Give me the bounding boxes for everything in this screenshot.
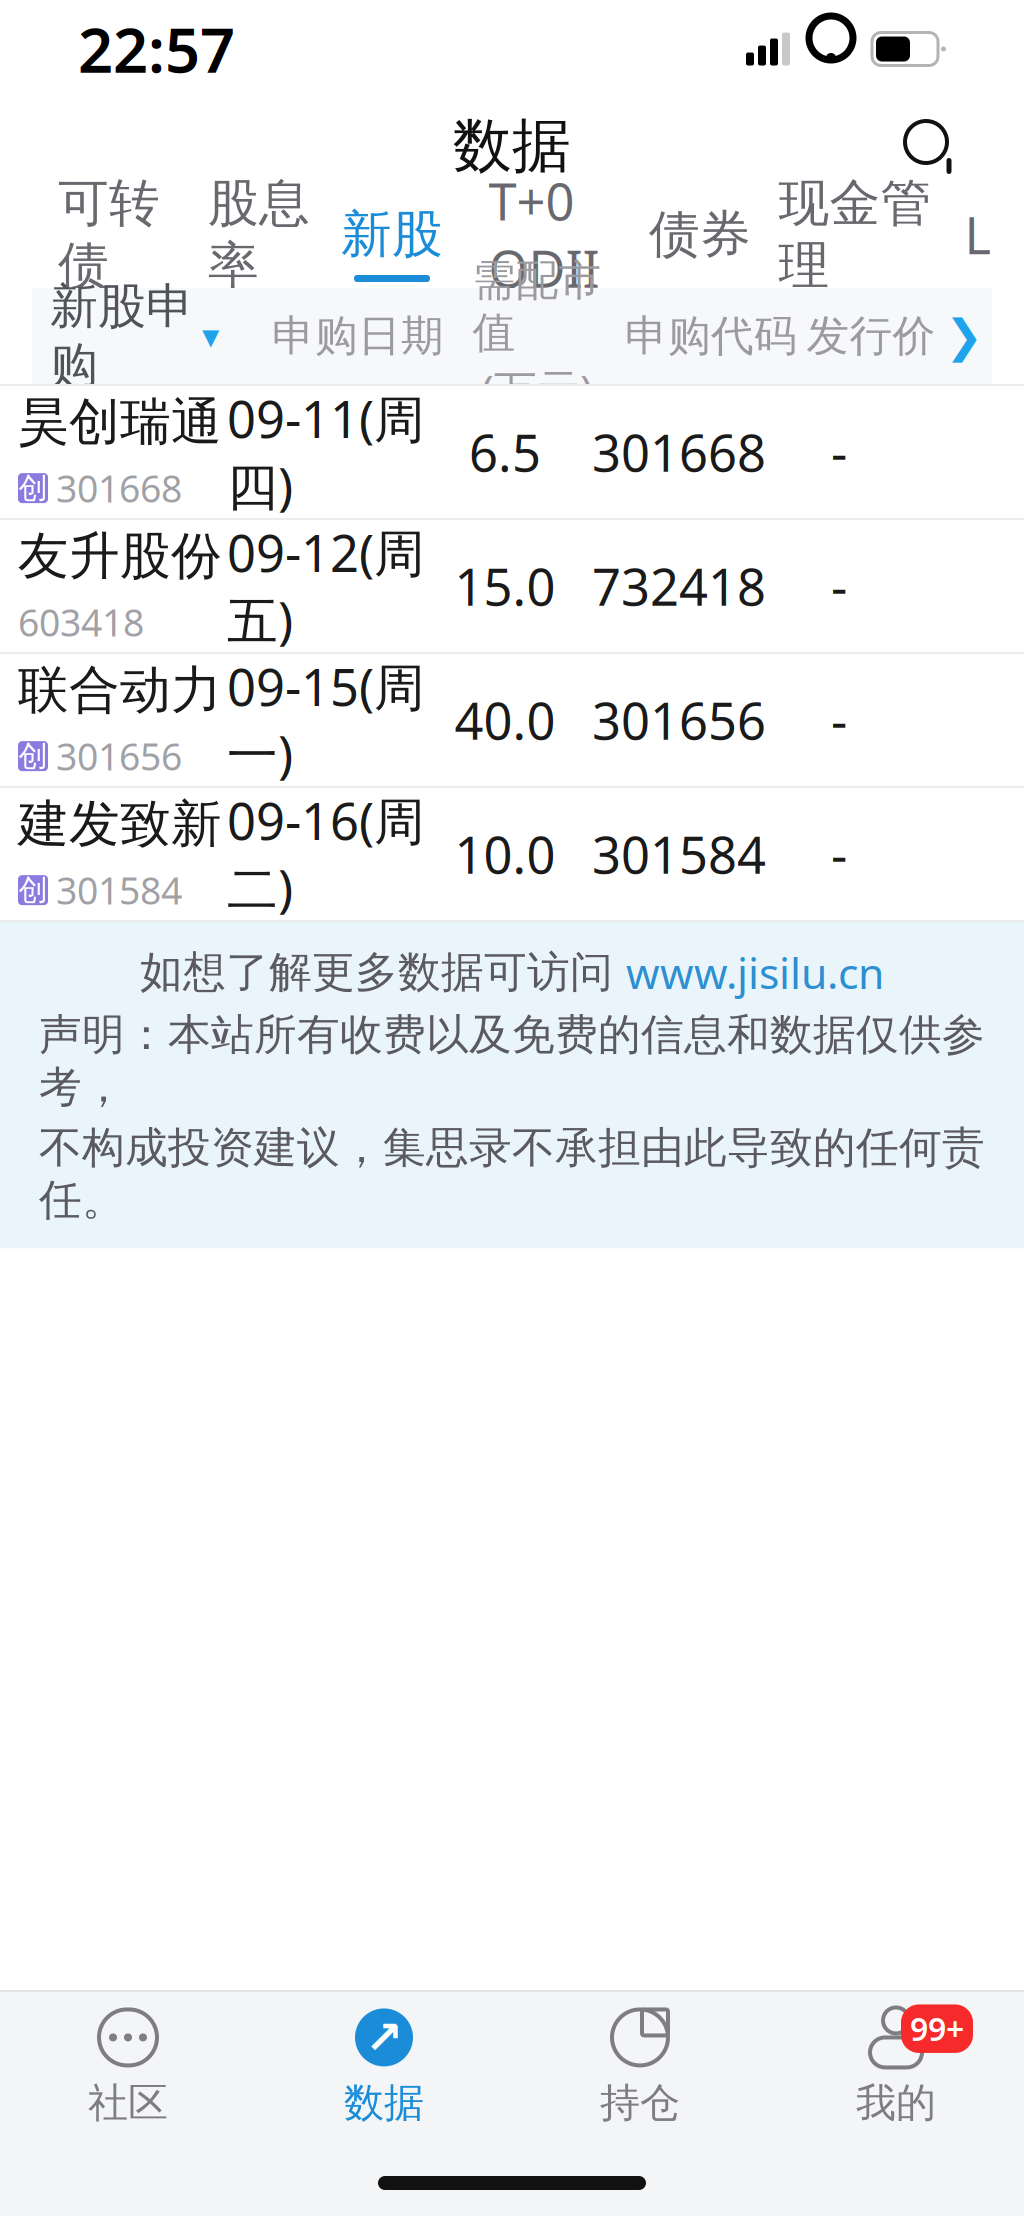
staticText: 不构成投资建议，集思录不承担由此导致的任何责任。 bbox=[39, 1121, 985, 1226]
button[interactable]: 建发致新 bbox=[0, 788, 1024, 922]
staticText: 10.0 bbox=[454, 820, 555, 888]
staticText: - bbox=[831, 418, 847, 486]
staticText: ❯ bbox=[945, 310, 983, 362]
staticText: 22:57 bbox=[78, 8, 235, 90]
button[interactable]: 债券 bbox=[638, 194, 762, 288]
button[interactable]: 更多列 bbox=[936, 288, 992, 384]
staticText: 需配市值 bbox=[472, 254, 601, 359]
staticText: 社区 bbox=[88, 2078, 168, 2127]
staticText: 创 bbox=[18, 470, 47, 506]
staticText: 可转债 bbox=[58, 172, 160, 297]
staticText: 09-15(周一) bbox=[227, 653, 425, 787]
staticText: 09-12(周五) bbox=[227, 519, 425, 653]
staticText: 如想了解更多数据可访问 bbox=[140, 946, 626, 998]
button[interactable]: 新股申购 bbox=[32, 288, 258, 384]
staticText: 现金管理 bbox=[778, 172, 931, 297]
button[interactable]: T+0 QDII bbox=[450, 194, 638, 288]
staticText: 建发致新 bbox=[18, 793, 222, 855]
staticText: 发行价 bbox=[806, 310, 935, 362]
staticText: www.jisilu.cn bbox=[626, 944, 884, 1001]
staticText: T+0 QDII bbox=[488, 167, 599, 302]
staticText: 新股申购 bbox=[50, 277, 194, 395]
staticText: 301584 bbox=[592, 820, 766, 888]
button[interactable]: ↗ bbox=[256, 1992, 512, 2142]
staticText: ▾ bbox=[202, 316, 219, 356]
staticText: 昊创瑞通 bbox=[18, 391, 222, 453]
staticText: 301584 bbox=[56, 865, 182, 915]
staticText: 创 bbox=[18, 872, 47, 908]
button[interactable]: 新股 bbox=[334, 194, 450, 288]
staticText: 301668 bbox=[56, 463, 182, 513]
staticText: - bbox=[831, 552, 847, 620]
button[interactable]: 社区 bbox=[0, 1992, 256, 2142]
staticText: 09-16(周二) bbox=[227, 787, 425, 921]
staticText: 联合动力 bbox=[18, 659, 222, 721]
staticText: 99+ bbox=[910, 2007, 964, 2050]
button[interactable]: 联合动力 bbox=[0, 654, 1024, 788]
staticText: 301668 bbox=[592, 418, 766, 486]
staticText: 15.0 bbox=[454, 552, 555, 620]
button[interactable]: www.jisilu.cn bbox=[626, 944, 884, 1001]
staticText: 持仓 bbox=[600, 2078, 680, 2127]
staticText: 申购日期 bbox=[272, 310, 444, 362]
staticText: (万元) bbox=[481, 361, 593, 418]
button[interactable]: 可转债 bbox=[34, 194, 184, 288]
staticText: ↗ bbox=[365, 2012, 403, 2063]
staticText: 732418 bbox=[592, 552, 766, 620]
staticText: 301656 bbox=[56, 731, 182, 781]
staticText: 申购代码 bbox=[625, 310, 797, 362]
staticText: 股息率 bbox=[208, 172, 310, 297]
staticText: - bbox=[831, 686, 847, 754]
staticText: 新股 bbox=[341, 203, 443, 266]
staticText: 603418 bbox=[18, 597, 144, 647]
staticText: L bbox=[964, 201, 991, 268]
staticText: 债券 bbox=[649, 203, 751, 266]
staticText: 数据 bbox=[453, 110, 571, 182]
staticText: 友升股份 bbox=[18, 525, 222, 587]
staticText: 6.5 bbox=[469, 418, 541, 486]
button[interactable]: 持仓 bbox=[512, 1992, 768, 2142]
button[interactable]: 友升股份 bbox=[0, 520, 1024, 654]
staticText: 声明：本站所有收费以及免费的信息和数据仅供参考， bbox=[39, 1009, 985, 1113]
staticText: - bbox=[831, 820, 847, 888]
button[interactable]: 99+ bbox=[768, 1992, 1024, 2142]
button[interactable]: 现金管理 bbox=[762, 194, 948, 288]
staticText: 数据 bbox=[344, 2078, 424, 2127]
staticText: 09-11(周四) bbox=[227, 385, 425, 519]
staticText: 301656 bbox=[592, 686, 766, 754]
staticText: 我的 bbox=[856, 2078, 936, 2127]
button[interactable]: 股息率 bbox=[184, 194, 334, 288]
button[interactable]: 昊创瑞通 bbox=[0, 386, 1024, 520]
button[interactable]: L bbox=[948, 194, 1008, 288]
button[interactable]: 搜索 bbox=[888, 104, 972, 188]
staticText: 40.0 bbox=[454, 686, 555, 754]
staticText: 创 bbox=[18, 738, 47, 774]
